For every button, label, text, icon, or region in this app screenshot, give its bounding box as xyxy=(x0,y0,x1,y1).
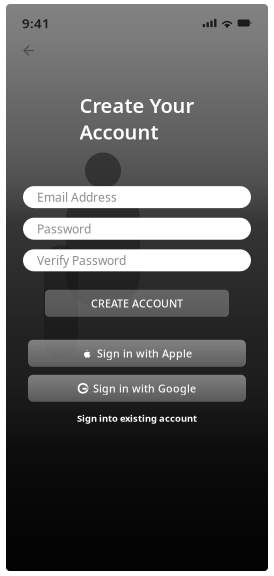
staticText: Sign in with Google xyxy=(93,381,196,395)
staticText: Sign in with Apple xyxy=(97,346,192,360)
button[interactable]: Sign in with Google xyxy=(28,375,246,402)
button[interactable]: Verify Password xyxy=(23,249,251,271)
button[interactable]: Email Address xyxy=(23,186,251,208)
button[interactable]: Password xyxy=(23,218,251,240)
button[interactable]: Sign into existing account xyxy=(73,408,201,428)
staticText: Verify Password xyxy=(37,252,126,268)
button[interactable]: Sign in with Apple xyxy=(28,340,246,367)
staticText: Sign into existing account xyxy=(77,412,197,424)
staticText: CREATE ACCOUNT xyxy=(91,296,183,310)
button[interactable]: CREATE ACCOUNT xyxy=(45,290,229,317)
staticText: 9:41 xyxy=(22,14,50,32)
staticText: Email Address xyxy=(37,189,117,205)
staticText: Create Your Account xyxy=(79,92,194,145)
staticText: Password xyxy=(37,221,91,237)
button[interactable]: Back xyxy=(16,38,41,63)
